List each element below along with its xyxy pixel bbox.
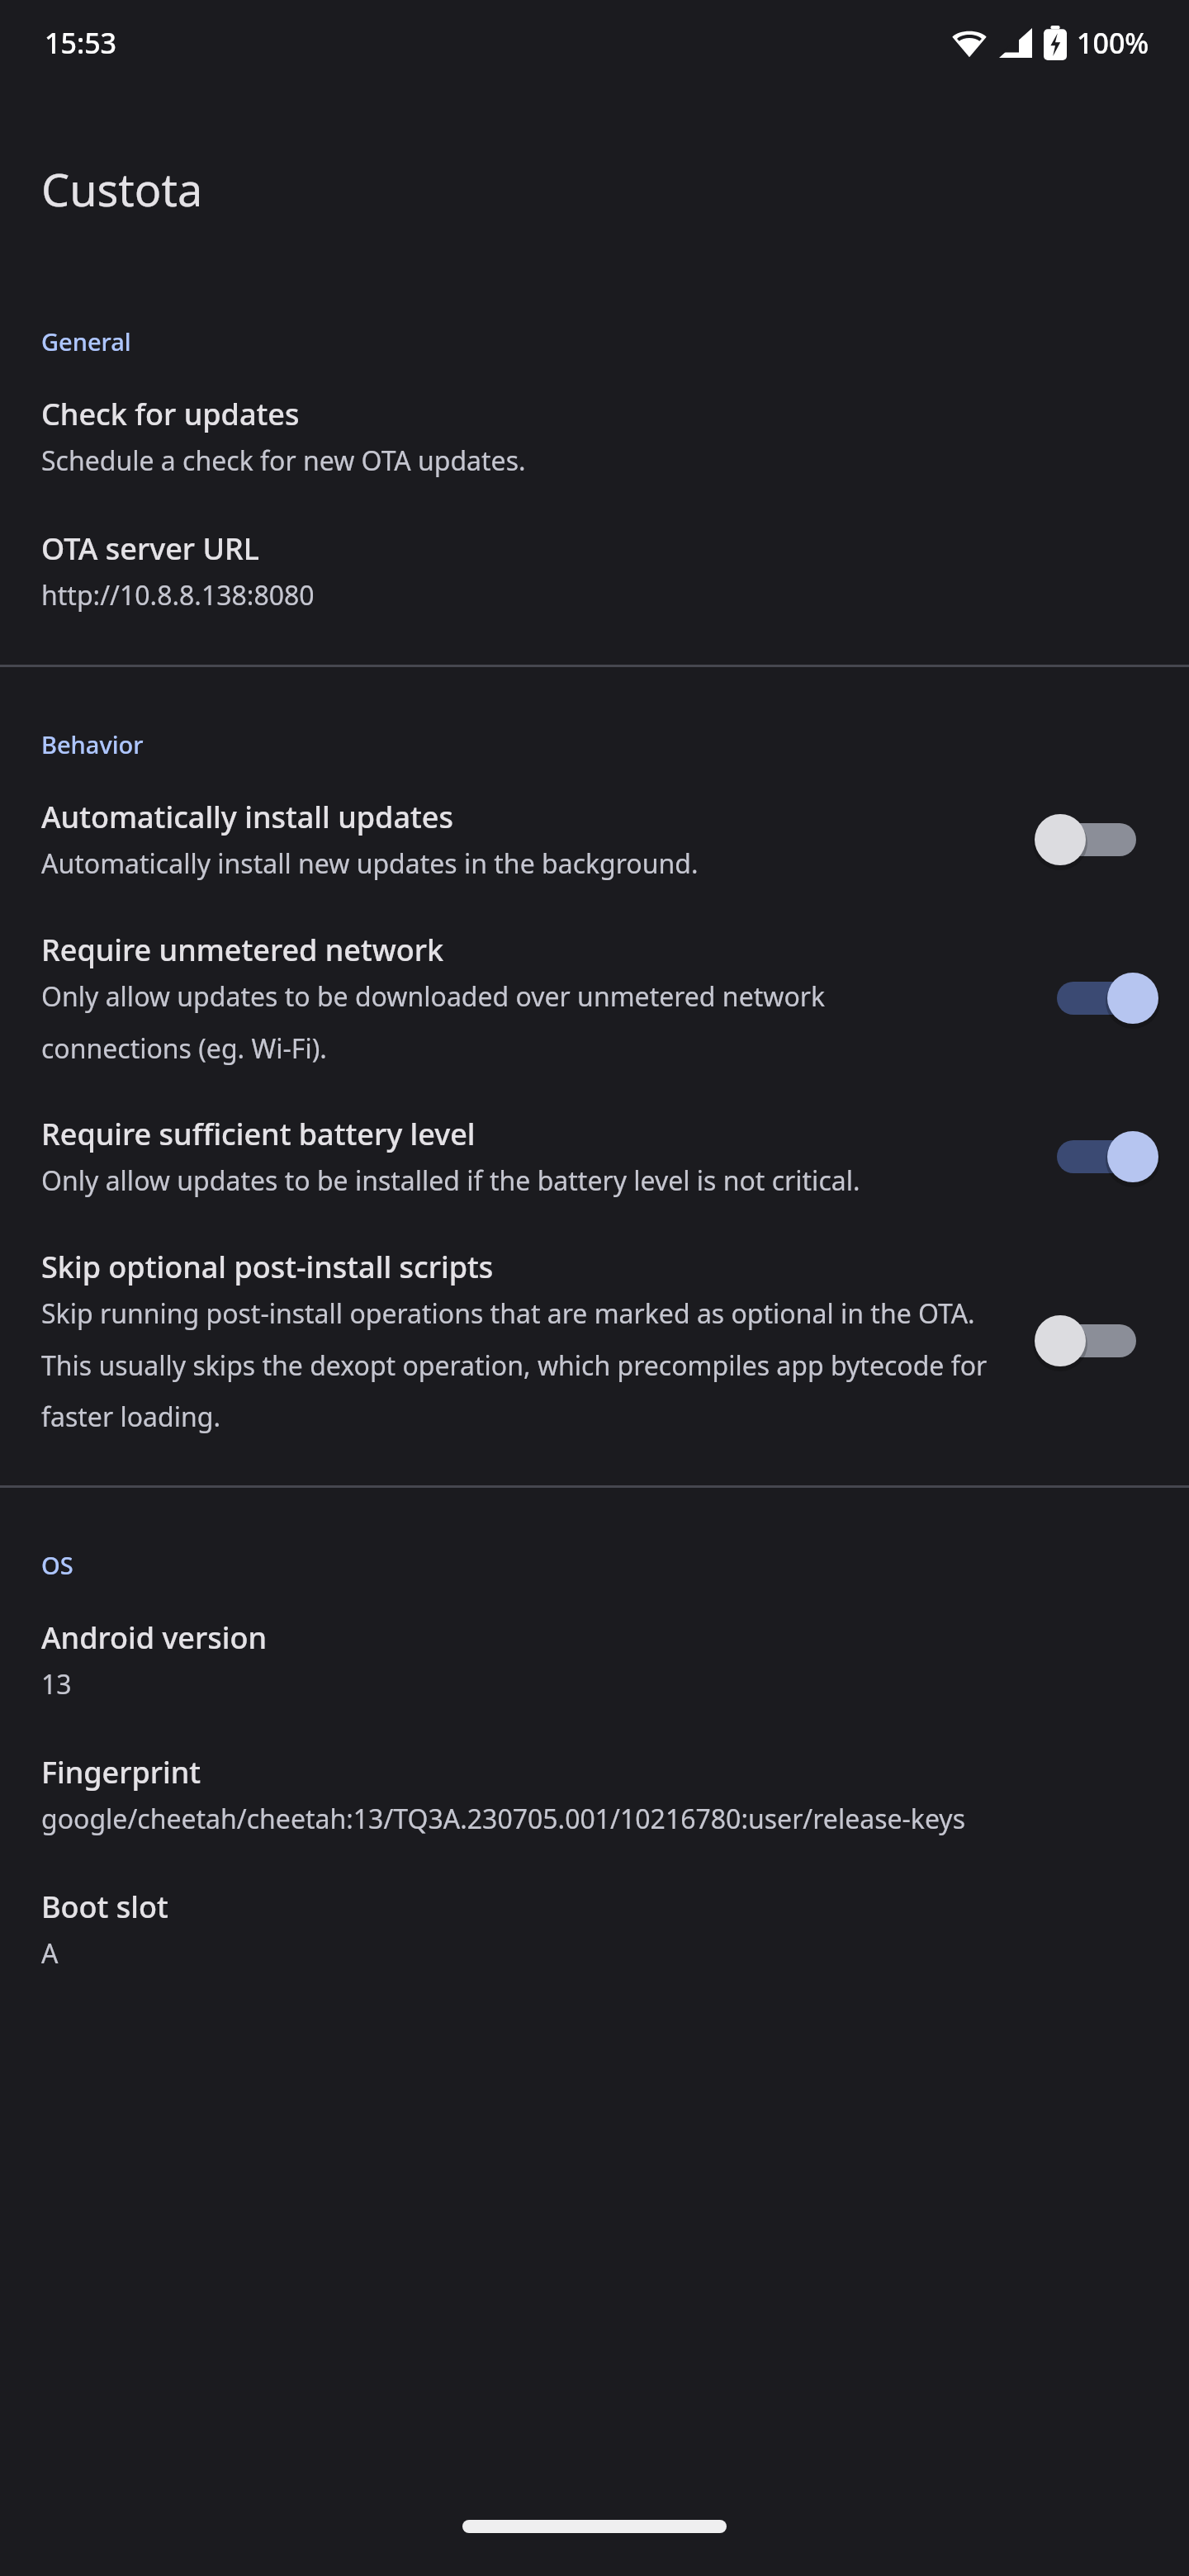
staticText: Android version (41, 1617, 268, 1658)
staticText: General (41, 325, 131, 358)
button[interactable]: Toggle, off (1045, 1311, 1148, 1371)
staticText: Automatically install updates (41, 797, 453, 837)
staticText: Automatically install new updates in the… (41, 845, 699, 882)
staticText: Check for updates (41, 394, 300, 434)
staticText: Skip running post-install operations tha… (41, 1295, 1029, 1434)
staticText: OTA server URL (41, 528, 259, 569)
button[interactable]: Toggle, off (1045, 810, 1148, 869)
staticText: OS (41, 1549, 73, 1581)
button[interactable]: Require unmetered network (0, 925, 1189, 1071)
staticText: Custota (41, 159, 203, 220)
staticText: 100% (1077, 24, 1149, 62)
button[interactable]: OTA server URL (0, 523, 1189, 618)
staticText: 13 (41, 1666, 72, 1702)
staticText: Behavior (41, 728, 144, 760)
staticText: Only allow updates to be installed if th… (41, 1163, 860, 1199)
button[interactable]: Automatically install updates (0, 792, 1189, 887)
button[interactable]: Fingerprint (0, 1747, 1189, 1842)
staticText: Schedule a check for new OTA updates. (41, 443, 526, 479)
staticText: Require unmetered network (41, 930, 444, 970)
staticText: Fingerprint (41, 1752, 201, 1792)
staticText: Require sufficient battery level (41, 1114, 476, 1154)
staticText: google/cheetah/cheetah:13/TQ3A.230705.00… (41, 1801, 965, 1837)
staticText: Boot slot (41, 1887, 168, 1927)
button[interactable]: Android version (0, 1612, 1189, 1707)
button[interactable]: Check for updates (0, 389, 1189, 484)
button[interactable]: Boot slot (0, 1882, 1189, 1977)
staticText: 15:53 (45, 24, 117, 62)
button[interactable]: Toggle, on (1045, 1127, 1148, 1186)
staticText: http://10.8.8.138:8080 (41, 577, 315, 613)
staticText: A (41, 1935, 59, 1972)
button[interactable]: Toggle, on (1045, 968, 1148, 1028)
button[interactable]: Skip optional post-install scripts (0, 1242, 1189, 1439)
staticText: Only allow updates to be downloaded over… (41, 978, 958, 1066)
button[interactable]: Require sufficient battery level (0, 1109, 1189, 1204)
staticText: Skip optional post-install scripts (41, 1247, 494, 1287)
